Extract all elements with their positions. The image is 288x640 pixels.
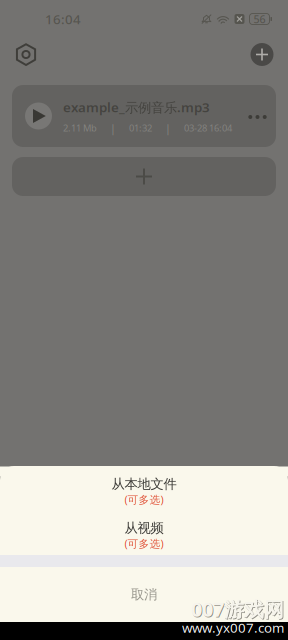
staticText: example_示例音乐.mp3 [63,98,210,116]
button[interactable]: 取消 [0,567,288,622]
staticText: www.yx007.com [182,619,284,636]
staticText: 取消 [131,586,157,603]
staticText: 从本地文件 [111,476,176,492]
button[interactable]: Add [236,37,288,71]
button[interactable]: example_示例音乐.mp3 [12,85,276,147]
staticText: (可多选) [124,536,163,551]
staticText: 2.11 Mb [63,122,97,134]
staticText: 007游戏网 [191,596,284,622]
staticText: 01:32 [129,122,152,134]
staticText: 从视频 [124,520,163,536]
button[interactable]: Settings [0,37,52,71]
staticText: 007游戏网 [192,596,285,623]
staticText: | [165,121,171,135]
staticText: | [110,121,116,135]
staticText: 03-28 16:04 [184,122,232,134]
staticText: (可多选) [124,492,163,507]
button[interactable]: 从视频 [0,510,288,554]
staticText: 56 [253,12,265,26]
staticText: 16:04 [45,10,81,28]
button[interactable]: 从本地文件 [0,466,288,510]
